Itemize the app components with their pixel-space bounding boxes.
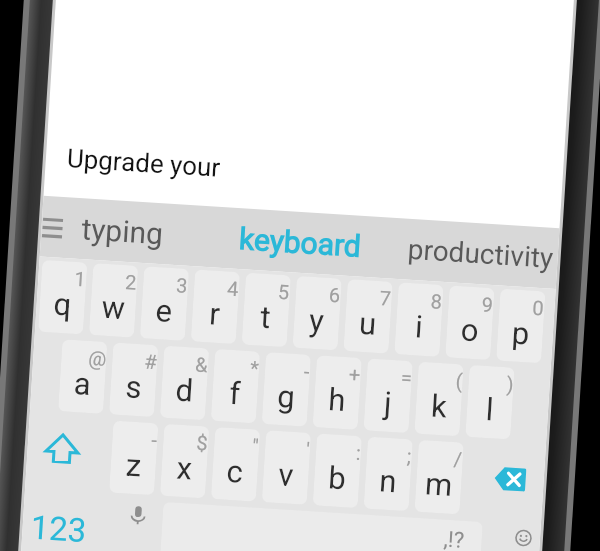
staticText: $: [196, 431, 209, 454]
button[interactable]: typing: [62, 197, 182, 265]
staticText: w: [101, 289, 127, 326]
button[interactable]: Voice input: [110, 496, 164, 551]
staticText: +: [348, 362, 362, 386]
staticText: 2: [125, 270, 138, 294]
staticText: (: [455, 369, 463, 392]
staticText: n: [378, 462, 398, 499]
staticText: g: [276, 378, 296, 415]
staticText: *: [249, 356, 260, 380]
staticText: keyboard: [238, 221, 362, 264]
staticText: h: [327, 381, 347, 418]
staticText: u: [358, 305, 378, 342]
staticText: /: [453, 447, 463, 470]
staticText: =: [400, 366, 412, 389]
staticText: 1: [74, 267, 87, 291]
staticText: 123: [29, 508, 88, 550]
button[interactable]: m: [414, 440, 464, 514]
button[interactable]: o: [445, 285, 495, 360]
staticText: z: [125, 446, 143, 483]
staticText: ): [506, 372, 514, 396]
staticText: j: [383, 385, 393, 421]
button[interactable]: Menu: [31, 195, 74, 259]
staticText: typing: [80, 211, 164, 251]
staticText: x: [176, 450, 194, 487]
button[interactable]: t: [242, 273, 291, 347]
button[interactable]: v: [262, 430, 311, 505]
staticText: 0: [532, 296, 545, 319]
staticText: m: [424, 465, 454, 503]
staticText: ': [305, 438, 311, 461]
staticText: r: [208, 295, 221, 332]
button[interactable]: d: [160, 346, 209, 420]
button[interactable]: a: [58, 339, 107, 414]
button[interactable]: g: [262, 352, 311, 427]
button[interactable]: ,!?: [423, 515, 483, 551]
button[interactable]: s: [109, 342, 158, 417]
staticText: :: [355, 441, 362, 464]
button[interactable]: i: [394, 282, 444, 357]
staticText: ;: [406, 444, 413, 467]
staticText: 5: [277, 280, 291, 303]
button[interactable]: productivity: [401, 218, 559, 289]
staticText: b: [327, 459, 347, 496]
staticText: &: [194, 353, 209, 376]
staticText: #: [144, 349, 158, 373]
staticText: 3: [175, 273, 189, 297]
button[interactable]: k: [414, 362, 464, 436]
button[interactable]: c: [211, 427, 260, 502]
staticText: d: [174, 371, 195, 409]
staticText: -: [303, 359, 311, 383]
staticText: ": [251, 434, 260, 458]
staticText: 9: [481, 292, 494, 316]
staticText: o: [460, 311, 480, 348]
button[interactable]: p: [496, 289, 545, 363]
button[interactable]: Delete: [462, 440, 544, 522]
staticText: y: [308, 302, 325, 339]
button[interactable]: r: [191, 269, 240, 344]
staticText: 8: [430, 289, 443, 313]
button[interactable]: keyboard: [229, 208, 371, 277]
staticText: k: [430, 387, 448, 424]
staticText: s: [125, 368, 143, 405]
button[interactable]: b: [313, 433, 362, 508]
button[interactable]: z: [109, 421, 158, 495]
button[interactable]: Emoji: [492, 520, 552, 551]
staticText: c: [225, 453, 245, 490]
button[interactable]: h: [312, 355, 362, 430]
button[interactable]: f: [211, 349, 260, 423]
button[interactable]: SwiftKey: [159, 502, 483, 551]
staticText: 7: [379, 286, 392, 310]
button[interactable]: 123: [20, 490, 96, 551]
staticText: @: [88, 346, 107, 370]
button[interactable]: j: [363, 358, 413, 433]
button[interactable]: l: [465, 365, 515, 439]
staticText: i: [414, 308, 424, 345]
staticText: ,!?: [443, 527, 465, 551]
button[interactable]: q: [38, 260, 87, 334]
button[interactable]: y: [292, 276, 342, 350]
staticText: 6: [328, 283, 342, 307]
button[interactable]: n: [363, 437, 413, 511]
staticText: Upgrade your: [66, 143, 222, 183]
staticText: q: [53, 286, 73, 323]
staticText: f: [228, 375, 242, 411]
button[interactable]: w: [89, 263, 138, 338]
staticText: a: [73, 365, 92, 402]
button[interactable]: Shift: [25, 412, 111, 495]
staticText: -: [151, 428, 158, 451]
button[interactable]: u: [343, 279, 393, 354]
button[interactable]: e: [140, 266, 189, 341]
staticText: l: [485, 391, 495, 427]
staticText: 4: [226, 276, 240, 300]
staticText: productivity: [407, 233, 555, 275]
staticText: p: [511, 314, 531, 352]
staticText: t: [259, 299, 272, 335]
staticText: v: [277, 456, 296, 493]
button[interactable]: x: [160, 424, 209, 498]
staticText: e: [154, 292, 174, 329]
